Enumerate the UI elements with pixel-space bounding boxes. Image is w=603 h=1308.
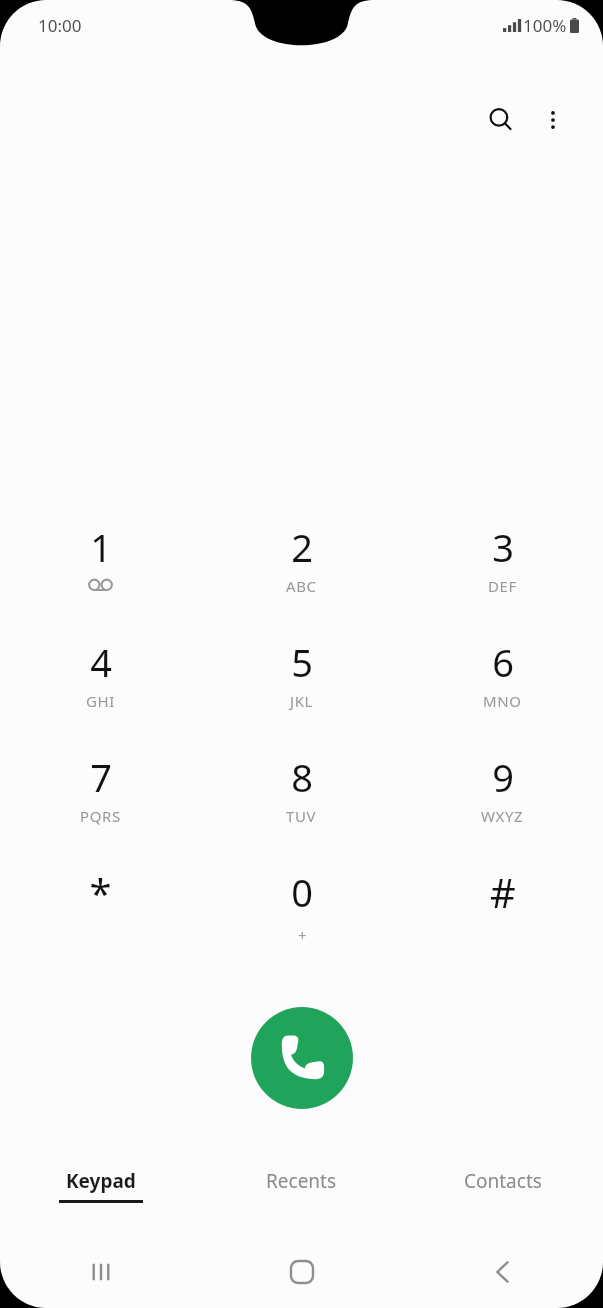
staticText: 2 — [291, 521, 313, 573]
staticText: * — [89, 865, 112, 919]
staticText: PQRS — [80, 806, 121, 826]
button[interactable]: 3 — [402, 518, 603, 633]
staticText: 6 — [492, 636, 514, 688]
button[interactable]: Contacts — [402, 1168, 603, 1224]
staticText: 3 — [492, 521, 514, 573]
staticText: Keypad — [66, 1168, 136, 1194]
staticText: 7 — [90, 751, 112, 803]
staticText: JKL — [290, 691, 314, 711]
button[interactable]: 1 — [0, 518, 201, 633]
staticText: + — [298, 925, 307, 945]
staticText: 0 — [291, 866, 313, 918]
button[interactable]: Home — [201, 1248, 402, 1296]
staticText: ABC — [286, 576, 317, 596]
button[interactable]: 9 — [402, 748, 603, 863]
button[interactable]: Recents — [201, 1168, 402, 1224]
staticText: 10:00 — [38, 14, 82, 37]
staticText: 1 — [90, 521, 112, 573]
button[interactable]: 0 — [201, 863, 402, 978]
staticText: Recents — [266, 1168, 337, 1194]
button[interactable]: 7 — [0, 748, 201, 863]
button[interactable]: # — [402, 863, 603, 978]
staticText: Contacts — [464, 1168, 542, 1194]
staticText: 9 — [492, 751, 514, 803]
button[interactable]: 5 — [201, 633, 402, 748]
staticText: # — [490, 865, 516, 919]
button[interactable]: * — [0, 863, 201, 978]
button[interactable]: Call — [251, 1007, 353, 1109]
staticText: DEF — [488, 576, 517, 596]
button[interactable]: 6 — [402, 633, 603, 748]
staticText: GHI — [86, 691, 115, 711]
button[interactable]: Back — [402, 1248, 603, 1296]
button[interactable]: Keypad — [0, 1168, 201, 1224]
button[interactable]: 8 — [201, 748, 402, 863]
staticText: MNO — [483, 691, 522, 711]
staticText: 5 — [291, 636, 313, 688]
staticText: 4 — [90, 636, 112, 688]
button[interactable]: Search — [477, 96, 525, 144]
button[interactable]: Recent apps — [0, 1248, 201, 1296]
staticText: TUV — [286, 806, 317, 826]
staticText: WXYZ — [481, 806, 524, 826]
button[interactable]: 4 — [0, 633, 201, 748]
button[interactable]: More options — [531, 98, 575, 142]
button[interactable]: 2 — [201, 518, 402, 633]
staticText: 8 — [291, 751, 313, 803]
staticText: 100% — [523, 14, 567, 37]
